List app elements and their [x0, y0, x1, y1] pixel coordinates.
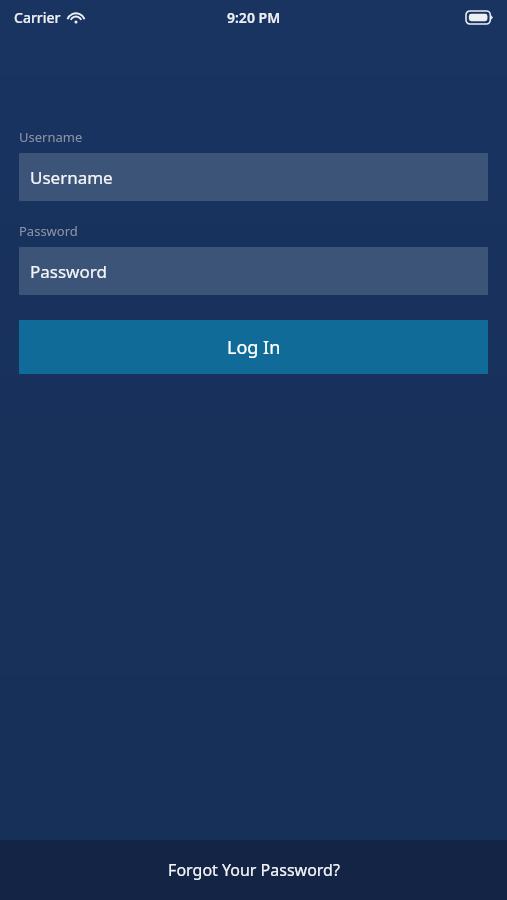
staticText: Username [30, 166, 113, 189]
button[interactable]: Forgot Your Password? [0, 840, 507, 900]
staticText: Password [30, 260, 107, 283]
button[interactable]: Password [19, 247, 488, 295]
button[interactable]: Username [19, 153, 488, 201]
button[interactable]: Log In [19, 320, 488, 374]
staticText: Username [19, 128, 83, 146]
staticText: Log In [227, 335, 281, 360]
staticText: Password [19, 222, 78, 240]
other: Battery full [466, 11, 493, 24]
staticText: 9:20 PM [227, 8, 281, 27]
staticText: Carrier [14, 8, 61, 27]
other: Wi-Fi signal [67, 10, 85, 24]
staticText: Forgot Your Password? [168, 859, 340, 881]
